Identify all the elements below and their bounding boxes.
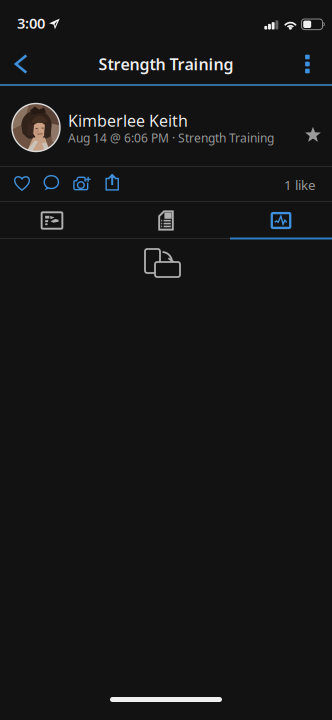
button[interactable]: Back: [0, 44, 43, 84]
staticText: Aug 14 @ 6:06 PM · Strength Training: [68, 130, 274, 146]
button[interactable]: Like: [7, 167, 37, 199]
button[interactable]: More options: [287, 44, 327, 84]
staticText: 3:00: [17, 13, 45, 33]
button[interactable]: Charts: [230, 202, 332, 239]
button[interactable]: Favorite: [294, 117, 332, 153]
staticText: Strength Training: [98, 53, 233, 75]
button[interactable]: Share: [97, 166, 127, 198]
staticText: Kimberlee Keith: [68, 110, 188, 131]
staticText: 1 like: [284, 176, 316, 194]
button[interactable]: Add photo: [66, 168, 98, 200]
button[interactable]: Notes: [111, 202, 221, 239]
button[interactable]: Photos: [0, 202, 104, 239]
button[interactable]: Comment: [36, 167, 66, 199]
